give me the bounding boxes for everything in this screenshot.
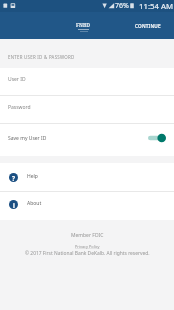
staticText: About bbox=[27, 200, 42, 207]
button[interactable]: i bbox=[0, 192, 174, 220]
button[interactable]: CONTINUE bbox=[122, 15, 174, 37]
button[interactable]: User ID bbox=[0, 68, 174, 96]
button[interactable]: Password bbox=[0, 96, 174, 124]
staticText: Password bbox=[8, 104, 31, 111]
staticText: CONTINUE bbox=[135, 23, 161, 29]
staticText: © 2017 First National Bank DeKalb. All r… bbox=[25, 250, 150, 257]
button[interactable]: Privacy Policy bbox=[75, 244, 100, 249]
staticText: ENTER USER ID & PASSWORD bbox=[8, 54, 75, 60]
staticText: Member FDIC bbox=[71, 232, 104, 239]
staticText: User ID bbox=[8, 76, 26, 83]
staticText: FNBD bbox=[76, 22, 91, 29]
staticText: Save my User ID bbox=[8, 135, 47, 142]
staticText: i bbox=[13, 201, 15, 209]
staticText: ? bbox=[12, 174, 15, 182]
staticText: Help bbox=[27, 173, 38, 180]
button[interactable]: ? bbox=[0, 163, 174, 191]
staticText: 11:54 AM bbox=[139, 1, 174, 12]
button[interactable]: Save my User ID bbox=[0, 124, 174, 156]
staticText: 76% bbox=[115, 1, 129, 11]
